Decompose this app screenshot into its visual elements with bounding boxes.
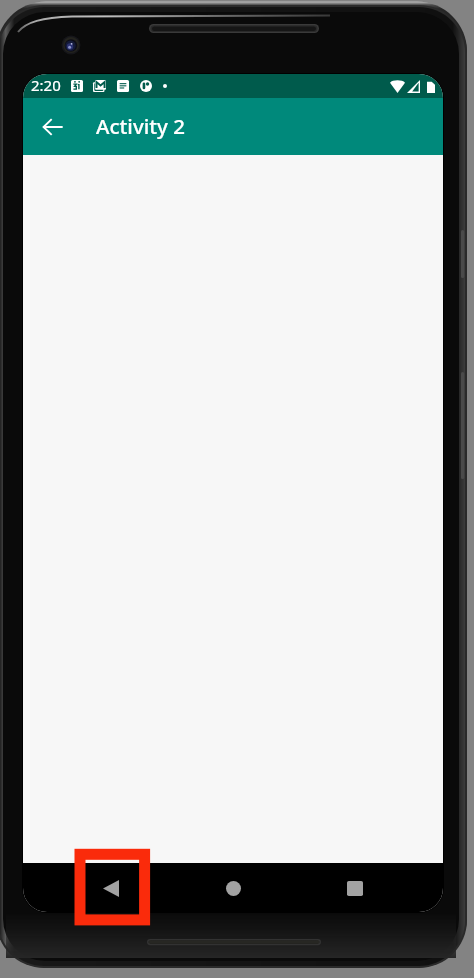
button[interactable]: Back [87,864,135,912]
staticText: 2:20 [31,75,61,95]
staticText: Activity 2 [96,112,185,140]
button[interactable]: Navigate up [29,103,77,151]
button[interactable]: Recent apps [331,864,379,912]
button[interactable]: Home [209,864,257,912]
